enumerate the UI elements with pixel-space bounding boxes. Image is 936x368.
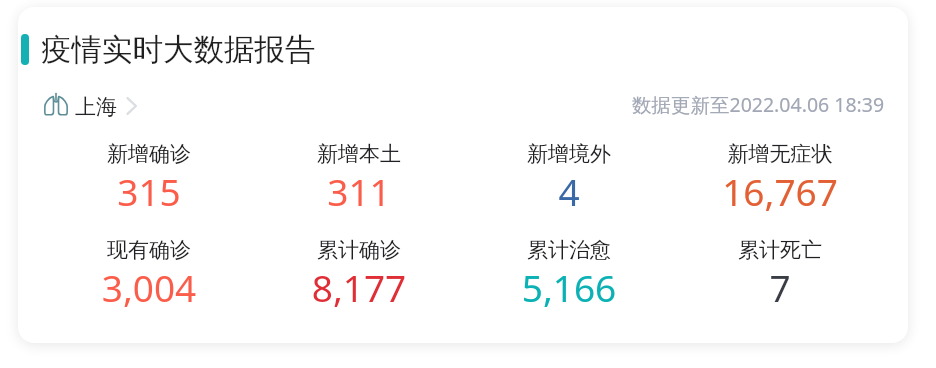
button[interactable]: 现有确诊 [44, 237, 254, 308]
staticText: 现有确诊 [44, 237, 254, 263]
staticText: 3,004 [44, 262, 254, 312]
staticText: 疫情实时大数据报告 [41, 31, 316, 69]
other: Change region [126, 97, 137, 115]
staticText: 5,166 [464, 262, 674, 312]
staticText: 新增无症状 [675, 141, 885, 167]
button[interactable]: 累计治愈 [464, 237, 674, 308]
staticText: 7 [675, 262, 885, 312]
staticText: 8,177 [254, 262, 464, 312]
button[interactable]: 新增确诊 [44, 141, 254, 212]
other: Lungs [44, 92, 68, 116]
button[interactable]: 累计死亡 [675, 237, 885, 308]
staticText: 311 [254, 166, 464, 216]
button[interactable]: 累计确诊 [254, 237, 464, 308]
button[interactable]: Lungs [41, 88, 142, 118]
staticText: 累计治愈 [464, 237, 674, 263]
button[interactable]: 新增本土 [254, 141, 464, 212]
staticText: 新增本土 [254, 141, 464, 167]
staticText: 上海 [75, 94, 117, 120]
staticText: 16,767 [675, 166, 885, 216]
staticText: 累计确诊 [254, 237, 464, 263]
staticText: 315 [44, 166, 254, 216]
staticText: 数据更新至2022.04.06 18:39 [632, 91, 885, 118]
button[interactable]: 新增境外 [464, 141, 674, 212]
button[interactable]: 新增无症状 [675, 141, 885, 212]
staticText: 新增境外 [464, 141, 674, 167]
staticText: 累计死亡 [675, 237, 885, 263]
staticText: 新增确诊 [44, 141, 254, 167]
staticText: 4 [464, 166, 674, 216]
